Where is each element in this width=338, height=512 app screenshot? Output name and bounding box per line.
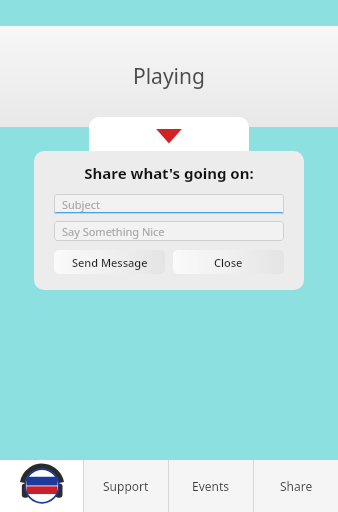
button[interactable]: Support	[84, 460, 168, 512]
staticText: Share what's going on:	[54, 163, 284, 183]
button[interactable]: Guide Us home	[0, 460, 83, 512]
staticText: Subject	[62, 197, 100, 212]
staticText: Close	[214, 255, 243, 270]
staticText: Events	[192, 478, 230, 494]
button[interactable]: Events	[169, 460, 253, 512]
staticText: Send Message	[72, 255, 148, 270]
button[interactable]: Say Something Nice	[54, 221, 284, 241]
button[interactable]: Send Message	[54, 250, 165, 274]
button[interactable]: Share	[254, 460, 338, 512]
button[interactable]: Subject	[54, 194, 284, 214]
staticText: Support	[103, 478, 149, 494]
staticText: Say Something Nice	[62, 224, 165, 239]
staticText: Playing	[133, 62, 205, 91]
staticText: Share	[280, 478, 313, 494]
button[interactable]: Close	[173, 250, 284, 274]
